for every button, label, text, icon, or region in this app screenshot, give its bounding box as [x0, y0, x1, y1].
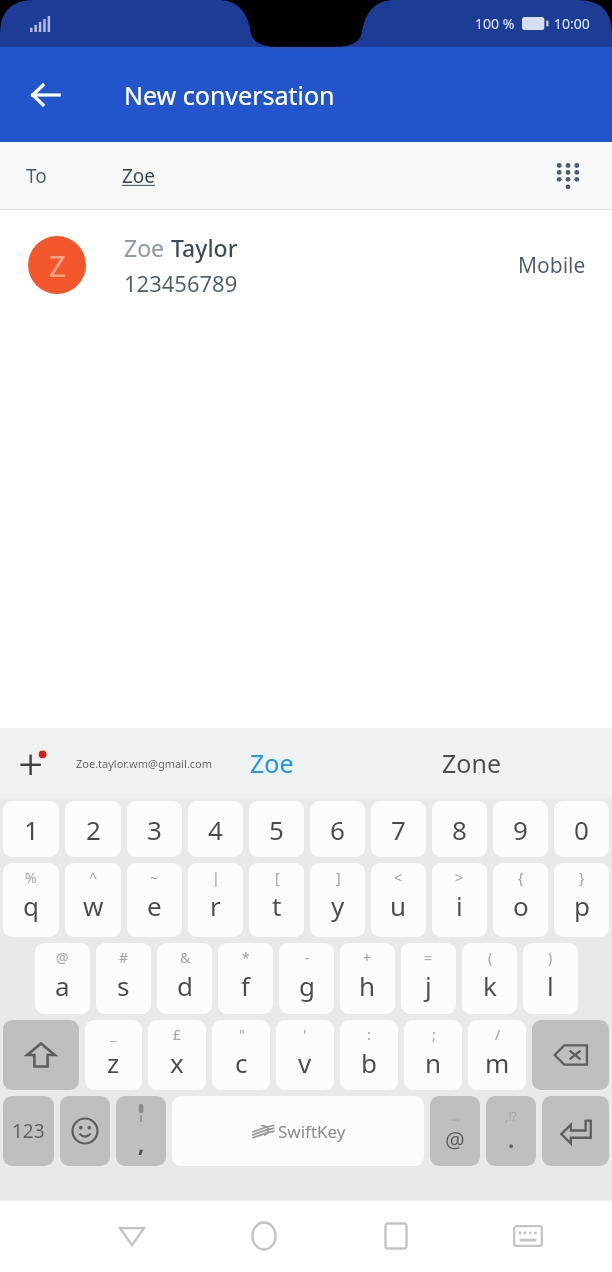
- staticText: ^: [89, 868, 98, 887]
- button[interactable]: |: [188, 863, 243, 937]
- button[interactable]: >: [432, 863, 487, 937]
- staticText: £: [173, 1025, 182, 1044]
- staticText: ': [303, 1025, 307, 1044]
- staticText: SwiftKey: [278, 1120, 346, 1143]
- button[interactable]: 1: [3, 801, 59, 857]
- button[interactable]: <: [371, 863, 426, 937]
- button[interactable]: 6: [310, 801, 365, 857]
- staticText: New conversation: [124, 78, 335, 112]
- button[interactable]: 123: [3, 1096, 54, 1166]
- button[interactable]: Z: [0, 210, 612, 320]
- staticText: ]: [336, 868, 341, 887]
- button[interactable]: Backspace: [532, 1020, 609, 1090]
- button[interactable]: Zoe: [250, 746, 294, 780]
- button[interactable]: Recents: [366, 1206, 426, 1266]
- button[interactable]: -: [279, 943, 334, 1014]
- button[interactable]: Enter: [542, 1096, 609, 1166]
- button[interactable]: ~: [127, 863, 182, 937]
- button[interactable]: +: [340, 943, 395, 1014]
- staticText: %: [25, 868, 37, 887]
- button[interactable]: 0: [554, 801, 609, 857]
- staticText: o: [513, 888, 529, 923]
- button[interactable]: Home: [234, 1206, 294, 1266]
- staticText: y: [331, 888, 345, 923]
- staticText: |: [212, 868, 220, 887]
- button[interactable]: =: [401, 943, 456, 1014]
- staticText: 6: [330, 812, 345, 847]
- staticText: 10:00: [554, 14, 590, 33]
- staticText: s: [117, 968, 130, 1003]
- staticText: 100 %: [475, 14, 515, 33]
- staticText: h: [359, 968, 376, 1003]
- staticText: >: [455, 868, 464, 887]
- staticText: ): [548, 948, 553, 967]
- staticText: 1: [24, 812, 39, 847]
- staticText: 0: [574, 812, 589, 847]
- staticText: (: [488, 948, 493, 967]
- button[interactable]: %: [3, 863, 59, 937]
- staticText: _: [110, 1025, 117, 1044]
- staticText: c: [235, 1045, 248, 1080]
- staticText: ": [239, 1025, 245, 1044]
- button[interactable]: Back: [102, 1206, 162, 1266]
- staticText: 9: [513, 812, 528, 847]
- button[interactable]: @: [35, 943, 90, 1014]
- staticText: i: [456, 888, 463, 923]
- button[interactable]: 3: [127, 801, 182, 857]
- staticText: #: [119, 948, 129, 967]
- button[interactable]: Emoji: [60, 1096, 110, 1166]
- staticText: m: [485, 1045, 510, 1080]
- staticText: 2: [86, 812, 101, 847]
- button[interactable]: Add: [8, 738, 58, 788]
- staticText: To: [26, 163, 47, 189]
- button[interactable]: 4: [188, 801, 243, 857]
- button[interactable]: }: [554, 863, 609, 937]
- button[interactable]: ): [523, 943, 578, 1014]
- button[interactable]: ': [276, 1020, 334, 1090]
- button[interactable]: Space: [172, 1096, 424, 1166]
- button[interactable]: ...: [430, 1096, 480, 1166]
- staticText: ~: [150, 868, 159, 887]
- button[interactable]: ,!?: [486, 1096, 536, 1166]
- button[interactable]: 8: [432, 801, 487, 857]
- button[interactable]: 7: [371, 801, 426, 857]
- staticText: .: [508, 1124, 515, 1154]
- staticText: b: [361, 1045, 377, 1080]
- button[interactable]: _: [85, 1020, 142, 1090]
- button[interactable]: {: [493, 863, 548, 937]
- button[interactable]: 2: [65, 801, 121, 857]
- staticText: k: [483, 968, 497, 1003]
- button[interactable]: /: [468, 1020, 526, 1090]
- button[interactable]: ": [212, 1020, 270, 1090]
- staticText: Zoe.taylor.wm@gmail.com: [76, 756, 212, 771]
- staticText: 4: [208, 812, 223, 847]
- staticText: 123456789: [124, 268, 238, 298]
- staticText: Zoe: [122, 163, 156, 189]
- button[interactable]: *: [218, 943, 273, 1014]
- button[interactable]: Back: [14, 63, 78, 127]
- button[interactable]: Voice input, comma: [116, 1096, 166, 1166]
- button[interactable]: (: [462, 943, 517, 1014]
- button[interactable]: ]: [310, 863, 365, 937]
- staticText: a: [55, 968, 70, 1003]
- staticText: Zoe: [250, 746, 294, 780]
- button[interactable]: ;: [404, 1020, 462, 1090]
- button[interactable]: Dialpad: [542, 150, 594, 202]
- staticText: ,: [138, 1128, 145, 1158]
- staticText: f: [241, 968, 250, 1003]
- button[interactable]: Shift: [3, 1020, 79, 1090]
- staticText: @: [445, 1124, 465, 1154]
- staticText: Zoe: [124, 232, 171, 263]
- button[interactable]: :: [340, 1020, 398, 1090]
- button[interactable]: [: [249, 863, 304, 937]
- button[interactable]: £: [148, 1020, 206, 1090]
- button[interactable]: &: [157, 943, 212, 1014]
- button[interactable]: Zone: [442, 746, 501, 780]
- button[interactable]: #: [96, 943, 151, 1014]
- button[interactable]: Hide keyboard: [498, 1206, 558, 1266]
- button[interactable]: 5: [249, 801, 304, 857]
- button[interactable]: 9: [493, 801, 548, 857]
- staticText: w: [83, 888, 104, 923]
- staticText: x: [170, 1045, 184, 1080]
- button[interactable]: ^: [65, 863, 121, 937]
